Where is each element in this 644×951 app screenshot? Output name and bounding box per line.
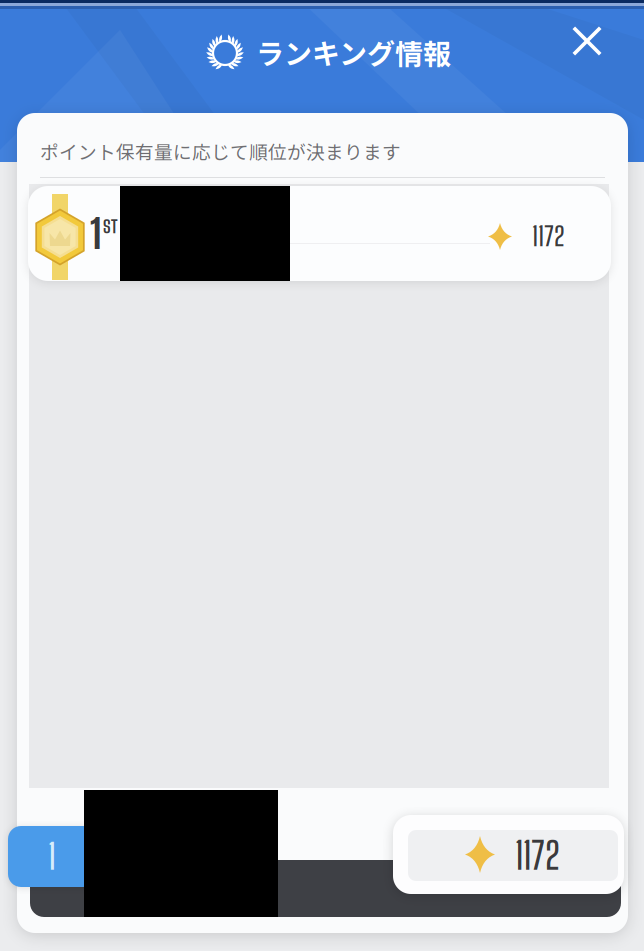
button[interactable]: Close — [557, 11, 617, 71]
staticText: 1 — [90, 206, 102, 254]
staticText: ST — [103, 215, 118, 237]
button[interactable]: 1 — [8, 826, 96, 887]
staticText: 1172 — [515, 833, 560, 878]
button[interactable]: 1172 — [393, 815, 624, 894]
button[interactable]: 1 — [28, 186, 611, 281]
staticText: 1172 — [532, 220, 564, 252]
staticText: ランキング情報 — [256, 32, 451, 72]
staticText: 1 — [48, 836, 56, 877]
staticText: ポイント保有量に応じて順位が決まります — [40, 137, 401, 164]
